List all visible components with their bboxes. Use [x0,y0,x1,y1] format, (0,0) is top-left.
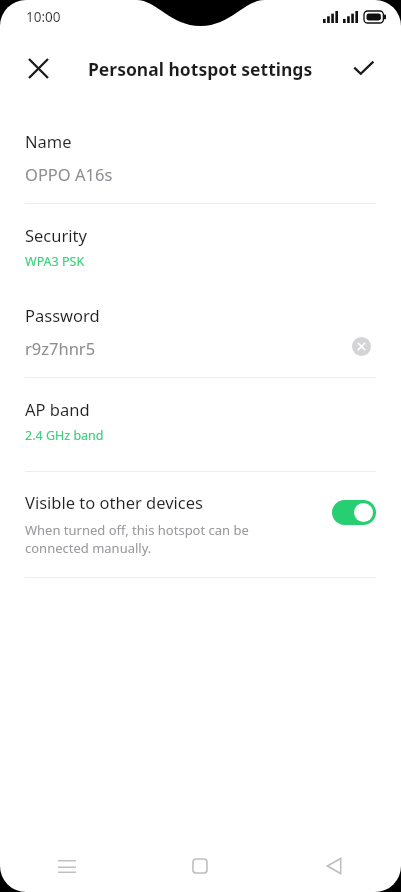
button[interactable]: Home [133,840,267,892]
staticText: 10:00 [26,8,61,26]
button[interactable]: Clear password [346,331,376,361]
button[interactable]: Back [267,840,401,892]
button[interactable]: AP band [0,378,401,471]
button[interactable]: Name [0,108,401,203]
button[interactable]: Security [0,204,401,286]
staticText: Visible to other devices [25,491,203,513]
button[interactable]: Confirm [339,44,387,92]
staticText: Name [25,130,72,152]
button[interactable]: Close [14,44,62,92]
button[interactable]: Recent apps [0,840,133,892]
staticText: 2.4 GHz band [25,427,104,444]
button[interactable]: Visible to other devices [0,472,401,577]
button[interactable]: Password [0,286,401,377]
staticText: OPPO A16s [25,163,113,185]
button[interactable]: Visible to other devices toggle [332,500,376,525]
staticText: Password [25,304,100,326]
staticText: WPA3 PSK [25,253,85,270]
staticText: Personal hotspot settings [88,57,313,81]
staticText: Security [25,224,87,246]
staticText: r9z7hnr5 [25,337,96,359]
staticText: AP band [25,398,90,420]
staticText: When turned off, this hotspot can be con… [25,521,314,557]
